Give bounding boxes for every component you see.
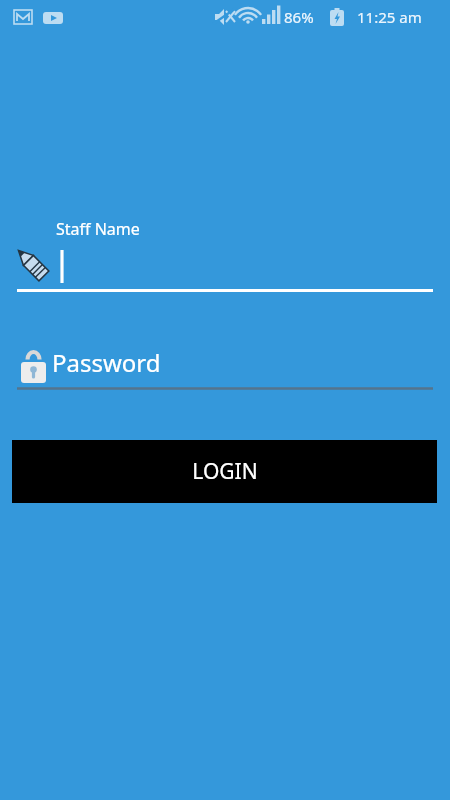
button[interactable]: Password input field (0, 345, 450, 395)
button[interactable]: Staff Name input field (0, 244, 450, 296)
staticText: Staff Name (56, 218, 140, 240)
staticText: LOGIN (192, 457, 258, 486)
staticText: 11:25 am (357, 7, 422, 27)
staticText: 86% (284, 7, 314, 27)
staticText: Password (52, 346, 161, 379)
button[interactable]: LOGIN (12, 440, 437, 503)
